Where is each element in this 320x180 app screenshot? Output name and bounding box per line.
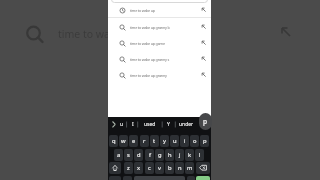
button[interactable]: f (145, 149, 154, 161)
staticText: q (112, 137, 116, 145)
button[interactable]: time to wake up (108, 2, 211, 18)
button[interactable]: time to wake up granny b (108, 19, 211, 35)
button[interactable]: o (190, 135, 199, 147)
button[interactable]: n (175, 162, 184, 174)
staticText: b (168, 164, 172, 172)
staticText: time to wake up granny (130, 73, 167, 78)
staticText: Y (167, 121, 170, 128)
staticText: time to wake up game (130, 41, 165, 46)
staticText: m (187, 164, 193, 172)
button[interactable]: w (119, 135, 128, 147)
button[interactable]: h (165, 149, 174, 161)
button[interactable]: t (150, 135, 159, 147)
button[interactable]: k (185, 149, 194, 161)
button[interactable]: c (145, 162, 154, 174)
button[interactable]: time to wake up granny s (108, 51, 211, 67)
staticText: time to wake up granny b (130, 25, 170, 30)
staticText: w (121, 137, 126, 145)
button[interactable]: a (114, 149, 123, 161)
staticText: x (137, 164, 141, 172)
staticText: time to wake up (130, 8, 155, 13)
button[interactable]: Y (163, 118, 174, 131)
staticText: I (132, 121, 134, 128)
button[interactable]: under (176, 118, 197, 131)
button[interactable]: i (180, 135, 189, 147)
button[interactable]: l (195, 149, 204, 161)
staticText: under (179, 121, 194, 128)
staticText: f (149, 151, 151, 159)
button[interactable] (196, 162, 210, 174)
button[interactable]: r (140, 135, 149, 147)
button[interactable] (196, 176, 210, 180)
staticText: t (153, 137, 156, 145)
button[interactable]: time to wake up granny (108, 67, 211, 83)
staticText: y (163, 137, 166, 145)
staticText: u (173, 137, 177, 145)
button[interactable] (109, 162, 121, 174)
button[interactable]: , (123, 176, 132, 180)
button[interactable]: m (185, 162, 194, 174)
button[interactable]: I (128, 118, 137, 131)
staticText: r (143, 137, 146, 145)
staticText: a (117, 151, 121, 159)
button[interactable]: time to wake up game (108, 35, 211, 51)
button[interactable]: b (165, 162, 174, 174)
staticText: j (179, 151, 181, 159)
staticText: p (203, 137, 207, 145)
button[interactable]: u (170, 135, 179, 147)
button[interactable]: d (134, 149, 143, 161)
staticText: v (158, 164, 161, 172)
staticText: n (178, 164, 182, 172)
staticText: used (144, 121, 156, 128)
button[interactable]: . (187, 176, 195, 180)
button[interactable]: ?123 (109, 176, 121, 180)
button[interactable]: p (200, 135, 209, 147)
button[interactable]: s (124, 149, 133, 161)
staticText: c (148, 164, 151, 172)
staticText: h (168, 151, 172, 159)
button[interactable]: x (134, 162, 143, 174)
staticText: z (127, 164, 130, 172)
button[interactable]: used (139, 118, 161, 131)
button[interactable]: j (175, 149, 184, 161)
button[interactable]: q (109, 135, 118, 147)
button[interactable]: y (160, 135, 169, 147)
staticText: time to wake up granny s (130, 57, 170, 62)
staticText: s (127, 151, 130, 159)
staticText: time to wake (58, 27, 122, 41)
button[interactable] (134, 176, 185, 180)
button[interactable]: e (129, 135, 138, 147)
button[interactable]: v (155, 162, 164, 174)
button[interactable]: z (124, 162, 133, 174)
staticText: d (137, 151, 141, 159)
staticText: l (199, 151, 201, 159)
button[interactable]: u (118, 118, 126, 131)
staticText: e (132, 137, 136, 145)
button[interactable]: g (155, 149, 164, 161)
staticText: g (158, 151, 162, 159)
staticText: p (203, 117, 208, 126)
staticText: o (193, 137, 197, 145)
staticText: k (188, 151, 192, 159)
staticText: i (184, 137, 186, 145)
staticText: u (120, 121, 124, 128)
